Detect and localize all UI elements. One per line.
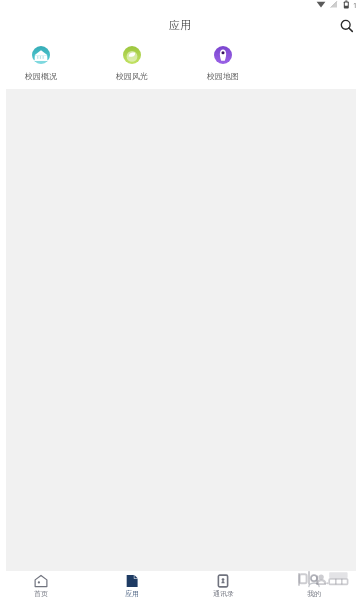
- button[interactable]: 校园风光: [110, 42, 154, 84]
- button[interactable]: 我的: [292, 571, 336, 600]
- button[interactable]: 校园概况: [19, 42, 63, 84]
- staticText: 校园地图: [207, 71, 239, 81]
- button[interactable]: 校园地图: [201, 42, 245, 84]
- button[interactable]: Search: [334, 13, 360, 39]
- staticText: 应用: [125, 589, 139, 598]
- staticText: 我的: [307, 589, 321, 598]
- staticText: 应用: [169, 18, 191, 32]
- staticText: 1: [353, 1, 358, 11]
- button[interactable]: 首页: [19, 571, 63, 600]
- button[interactable]: 应用: [110, 571, 154, 600]
- button[interactable]: 通讯录: [201, 571, 245, 600]
- staticText: 校园概况: [25, 71, 57, 81]
- staticText: 通讯录: [213, 589, 234, 598]
- staticText: 校园风光: [116, 71, 148, 81]
- staticText: 首页: [34, 589, 48, 598]
